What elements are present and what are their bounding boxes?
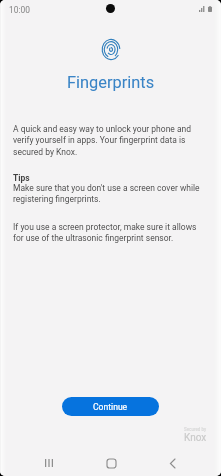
staticText: If you use a screen protector, make sure… <box>13 222 208 243</box>
staticText: Tips <box>13 173 30 183</box>
button[interactable]: Back <box>153 450 191 476</box>
button[interactable]: Recent apps <box>30 450 68 476</box>
staticText: 10:00 <box>9 5 30 15</box>
staticText: Continue <box>93 402 128 412</box>
staticText: Make sure that you don't use a screen co… <box>13 183 208 204</box>
button[interactable]: Home <box>92 450 130 476</box>
staticText: A quick and easy way to unlock your phon… <box>13 124 208 157</box>
staticText: Knox <box>184 432 207 444</box>
button[interactable]: Continue <box>62 397 159 416</box>
staticText: Secured by <box>184 427 207 432</box>
staticText: Fingerprints <box>67 73 155 92</box>
